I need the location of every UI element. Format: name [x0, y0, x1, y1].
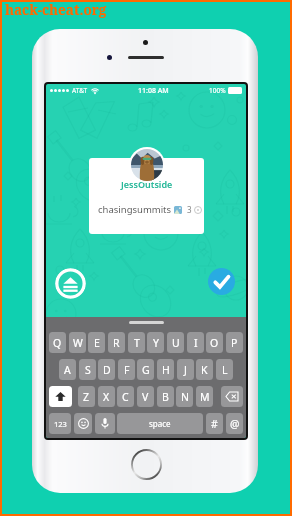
button[interactable]: G — [137, 359, 154, 380]
staticText: JessOutside — [121, 178, 173, 190]
staticText: C — [122, 390, 129, 404]
button[interactable]: E — [88, 332, 105, 353]
button[interactable]: C — [117, 386, 134, 407]
button[interactable]: Shift — [49, 386, 72, 407]
button[interactable]: # — [206, 413, 223, 434]
staticText: B — [162, 390, 169, 404]
staticText: space — [149, 418, 171, 429]
button[interactable]: D — [98, 359, 115, 380]
button[interactable]: Q — [49, 332, 66, 353]
staticText: N — [181, 390, 189, 404]
staticText: F — [124, 363, 130, 377]
button[interactable]: T — [128, 332, 145, 353]
staticText: hack-cheat.org — [5, 1, 107, 19]
button[interactable]: space — [117, 413, 203, 434]
staticText: U — [172, 336, 180, 350]
staticText: T — [134, 336, 140, 350]
staticText: chasingsummits — [98, 203, 172, 216]
staticText: 11:08 AM — [138, 86, 169, 96]
button[interactable]: @ — [226, 413, 243, 434]
button[interactable]: JessOutside — [89, 158, 204, 234]
staticText: R — [113, 336, 120, 350]
button[interactable]: R — [108, 332, 125, 353]
staticText: 123 — [54, 419, 67, 429]
button[interactable]: Send — [55, 268, 86, 299]
button[interactable]: Z — [78, 386, 95, 407]
button[interactable]: O — [206, 332, 223, 353]
staticText: O — [210, 336, 219, 350]
staticText: W — [73, 336, 83, 350]
button[interactable]: P — [226, 332, 243, 353]
button[interactable]: S — [79, 359, 96, 380]
button[interactable]: I — [187, 332, 204, 353]
staticText: E — [94, 336, 100, 350]
button[interactable]: J — [177, 359, 194, 380]
button[interactable]: Y — [147, 332, 164, 353]
staticText: Q — [53, 336, 62, 350]
staticText: X — [103, 390, 110, 404]
staticText: @ — [230, 417, 240, 431]
button[interactable]: Backspace — [221, 386, 243, 407]
staticText: M — [200, 390, 210, 404]
button[interactable]: H — [157, 359, 174, 380]
button[interactable]: M — [196, 386, 213, 407]
button[interactable]: A — [59, 359, 76, 380]
button[interactable]: K — [196, 359, 213, 380]
button[interactable]: F — [118, 359, 135, 380]
button[interactable]: Voice input — [95, 413, 115, 434]
button[interactable]: V — [137, 386, 154, 407]
staticText: I — [194, 336, 198, 350]
staticText: G — [142, 363, 150, 377]
staticText: K — [201, 363, 208, 377]
staticText: # — [211, 417, 218, 431]
staticText: J — [184, 363, 187, 377]
staticText: 3 — [187, 204, 192, 215]
staticText: V — [142, 390, 149, 404]
staticText: Y — [153, 336, 159, 350]
staticText: A — [64, 363, 71, 377]
staticText: D — [103, 363, 111, 377]
staticText: AT&T — [72, 86, 88, 95]
button[interactable]: Emoji — [74, 413, 92, 434]
button[interactable]: U — [167, 332, 184, 353]
button[interactable]: W — [69, 332, 86, 353]
button[interactable]: 123 — [49, 413, 71, 434]
staticText: S — [85, 363, 91, 377]
staticText: H — [162, 363, 170, 377]
button[interactable]: X — [98, 386, 115, 407]
button[interactable]: L — [216, 359, 233, 380]
button[interactable]: N — [176, 386, 193, 407]
staticText: L — [222, 363, 228, 377]
button[interactable]: B — [157, 386, 174, 407]
staticText: Z — [83, 390, 90, 404]
staticText: P — [231, 336, 238, 350]
button[interactable]: Confirm — [208, 268, 235, 295]
staticText: 100% — [209, 86, 226, 95]
